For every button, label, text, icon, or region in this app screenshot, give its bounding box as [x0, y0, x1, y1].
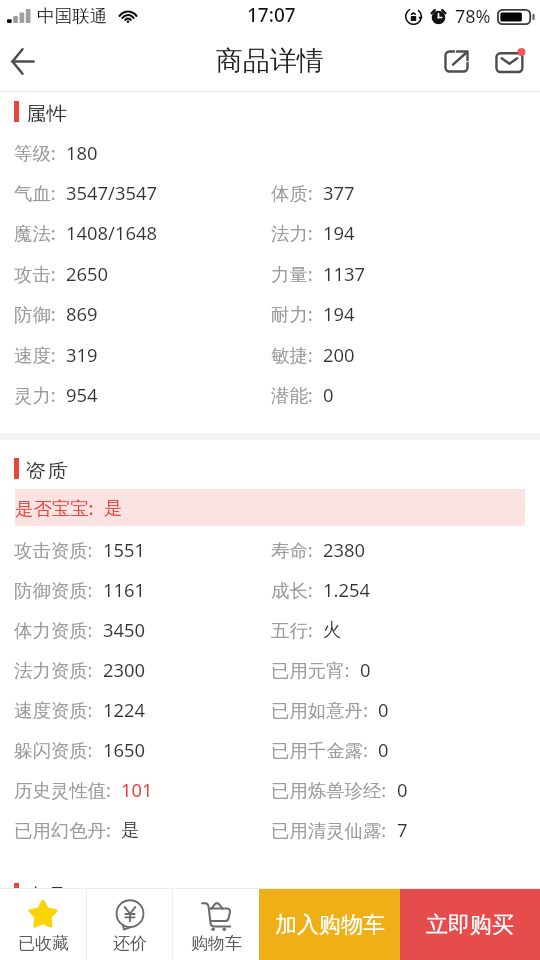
- staticText: 已用炼兽珍经:: [271, 777, 387, 802]
- staticText: 1551: [103, 537, 146, 562]
- staticText: 954: [66, 382, 98, 407]
- staticText: 还价: [113, 933, 147, 954]
- staticText: 已用千金露:: [271, 737, 368, 762]
- staticText: 敏捷:: [271, 342, 313, 367]
- staticText: 7: [397, 817, 408, 842]
- staticText: 力量:: [271, 261, 313, 286]
- staticText: 灵力:: [14, 382, 56, 407]
- button[interactable]: Share: [429, 32, 481, 91]
- staticText: 319: [66, 342, 98, 367]
- staticText: 资质: [25, 458, 68, 479]
- staticText: 本具: [25, 883, 68, 904]
- button[interactable]: 购物车: [173, 889, 259, 960]
- staticText: 法力:: [271, 220, 313, 245]
- staticText: 0: [378, 737, 389, 762]
- staticText: 3450: [103, 617, 146, 642]
- staticText: 攻击资质:: [14, 537, 93, 562]
- staticText: 中国联通: [37, 5, 107, 27]
- staticText: 200: [323, 342, 355, 367]
- staticText: 3547/3547: [66, 180, 157, 205]
- staticText: 已用清灵仙露:: [271, 817, 387, 842]
- staticText: 180: [66, 140, 98, 165]
- staticText: 等级:: [14, 140, 56, 165]
- staticText: 火: [323, 618, 342, 641]
- staticText: 1161: [103, 577, 146, 602]
- staticText: 法力资质:: [14, 657, 93, 682]
- staticText: 101: [121, 777, 153, 802]
- staticText: 194: [323, 301, 355, 326]
- staticText: 0: [323, 382, 334, 407]
- button[interactable]: 立即购买: [400, 889, 540, 960]
- staticText: 寿命:: [271, 537, 313, 562]
- staticText: 速度:: [14, 342, 56, 367]
- button[interactable]: 还价: [87, 889, 172, 960]
- button[interactable]: Messages: [481, 32, 533, 91]
- staticText: 1224: [103, 697, 146, 722]
- staticText: 历史灵性值:: [14, 777, 111, 802]
- staticText: 1137: [323, 261, 366, 286]
- staticText: 377: [323, 180, 355, 205]
- staticText: 魔法:: [14, 220, 56, 245]
- button[interactable]: 已收藏: [0, 889, 86, 960]
- staticText: 是: [104, 496, 123, 519]
- staticText: 防御:: [14, 301, 56, 326]
- staticText: 2380: [323, 537, 366, 562]
- staticText: 2300: [103, 657, 146, 682]
- staticText: 属性: [25, 101, 68, 122]
- staticText: 194: [323, 220, 355, 245]
- staticText: 气血:: [14, 180, 56, 205]
- staticText: 是: [121, 818, 140, 841]
- staticText: 0: [378, 697, 389, 722]
- staticText: 商品详情: [216, 44, 324, 78]
- staticText: 耐力:: [271, 301, 313, 326]
- staticText: 已用如意丹:: [271, 697, 368, 722]
- staticText: 体质:: [271, 180, 313, 205]
- staticText: 攻击:: [14, 261, 56, 286]
- staticText: 是否宝宝:: [15, 495, 94, 520]
- staticText: 速度资质:: [14, 697, 93, 722]
- staticText: 加入购物车: [275, 911, 385, 939]
- staticText: 已用元宵:: [271, 657, 350, 682]
- staticText: 防御资质:: [14, 577, 93, 602]
- staticText: 0: [397, 777, 408, 802]
- button[interactable]: Back: [0, 32, 52, 91]
- staticText: 0: [360, 657, 371, 682]
- staticText: 1650: [103, 737, 146, 762]
- staticText: 五行:: [271, 617, 313, 642]
- staticText: 立即购买: [426, 911, 514, 939]
- staticText: 1408/1648: [66, 220, 157, 245]
- button[interactable]: 加入购物车: [259, 889, 400, 960]
- staticText: 已收藏: [18, 933, 69, 954]
- staticText: 869: [66, 301, 98, 326]
- staticText: 已用幻色丹:: [14, 817, 111, 842]
- staticText: 2650: [66, 261, 109, 286]
- staticText: 1.254: [323, 577, 371, 602]
- staticText: 体力资质:: [14, 617, 93, 642]
- staticText: 购物车: [191, 933, 242, 954]
- staticText: 17:07: [247, 2, 296, 28]
- staticText: 躲闪资质:: [14, 737, 93, 762]
- staticText: 潜能:: [271, 382, 313, 407]
- staticText: 成长:: [271, 577, 313, 602]
- staticText: 78%: [455, 4, 491, 29]
